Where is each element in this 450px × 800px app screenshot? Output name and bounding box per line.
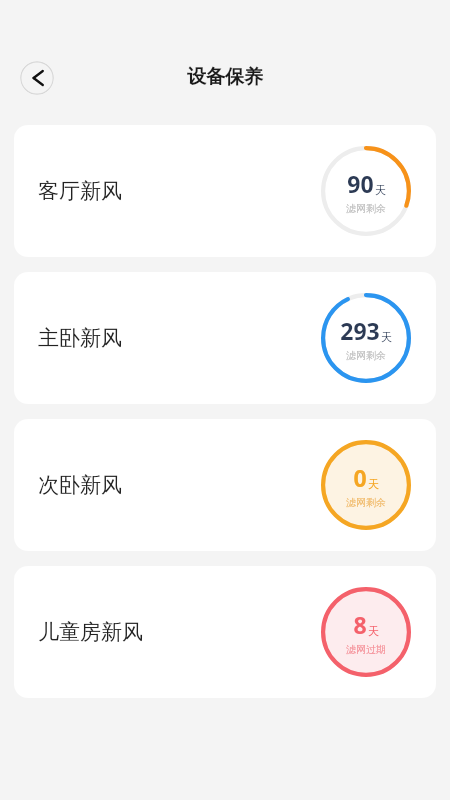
button[interactable]: 主卧新风 <box>14 272 436 404</box>
staticText: 滤网剩余 <box>346 349 386 362</box>
staticText: 滤网剩余 <box>346 496 386 509</box>
button[interactable]: Back <box>20 61 54 95</box>
staticText: 天 <box>381 330 392 344</box>
staticText: 0 <box>353 462 367 493</box>
staticText: 天 <box>368 624 379 638</box>
staticText: 主卧新风 <box>38 325 122 351</box>
staticText: 天 <box>375 183 386 197</box>
staticText: 8 <box>353 609 367 640</box>
staticText: 滤网过期 <box>346 643 386 656</box>
staticText: 设备保养 <box>187 65 263 89</box>
staticText: 天 <box>368 477 379 491</box>
button[interactable]: 次卧新风 <box>14 419 436 551</box>
button[interactable]: 客厅新风 <box>14 125 436 257</box>
button[interactable]: 儿童房新风 <box>14 566 436 698</box>
staticText: 次卧新风 <box>38 472 122 498</box>
staticText: 滤网剩余 <box>346 202 386 215</box>
staticText: 儿童房新风 <box>38 619 143 645</box>
staticText: 客厅新风 <box>38 178 122 204</box>
staticText: 90 <box>347 168 374 199</box>
staticText: 293 <box>340 315 380 346</box>
